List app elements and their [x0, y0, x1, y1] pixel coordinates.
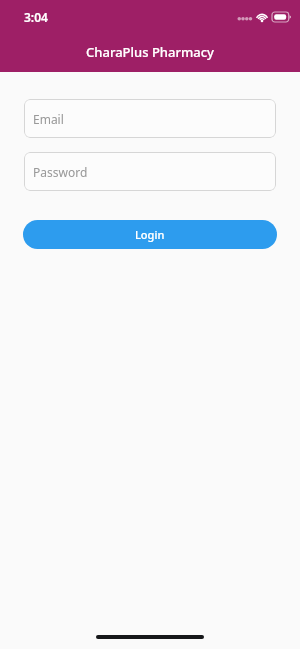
button[interactable]: Email [24, 99, 276, 138]
staticText: Login [135, 227, 165, 242]
button[interactable]: Login [23, 220, 277, 249]
staticText: CharaPlus Pharmacy [0, 43, 300, 61]
staticText: Password [33, 164, 88, 180]
button[interactable]: Password [24, 152, 276, 191]
staticText: Email [33, 111, 64, 127]
staticText: 3:04 [24, 9, 48, 25]
